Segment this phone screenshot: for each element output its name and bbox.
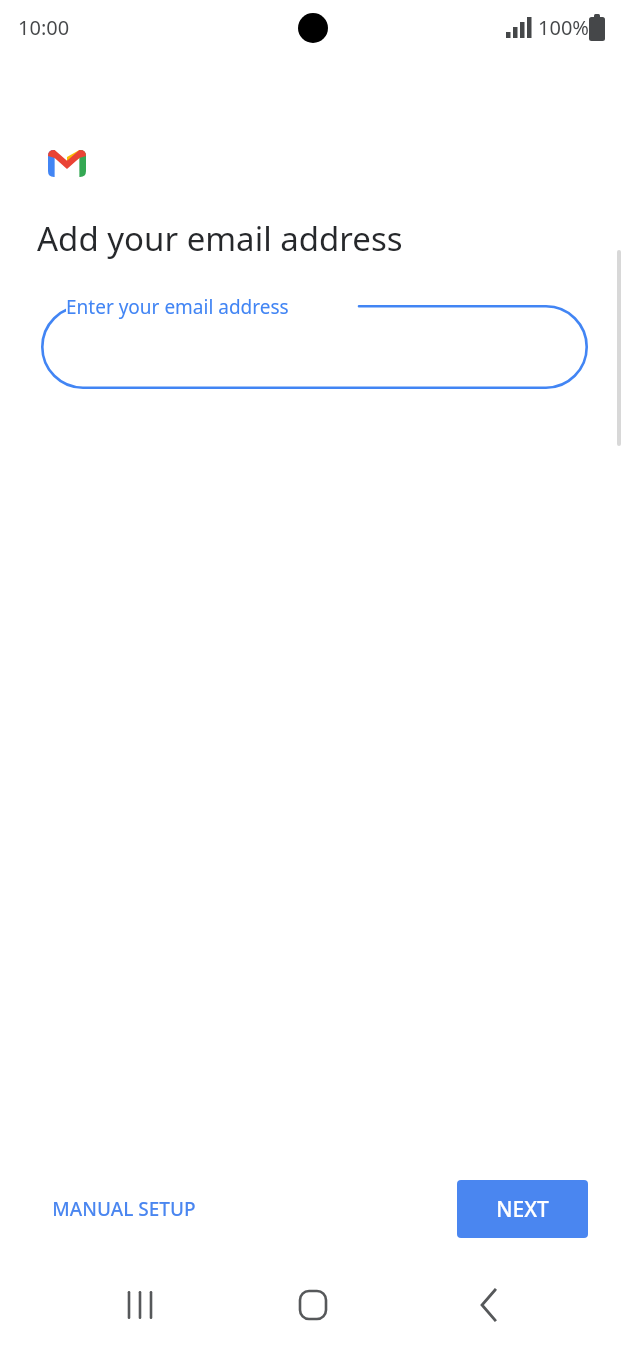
- button[interactable]: [41, 305, 588, 389]
- staticText: 10:00: [18, 14, 70, 41]
- button[interactable]: Back: [449, 1265, 529, 1345]
- staticText: MANUAL SETUP: [52, 1196, 196, 1222]
- staticText: 100%: [538, 14, 589, 41]
- staticText: NEXT: [496, 1195, 549, 1224]
- staticText: Enter your email address: [66, 294, 289, 320]
- button[interactable]: MANUAL SETUP: [22, 1184, 226, 1234]
- staticText: Add your email address: [37, 216, 403, 261]
- button[interactable]: Recent apps: [100, 1265, 180, 1345]
- button[interactable]: Home: [273, 1265, 353, 1345]
- button[interactable]: NEXT: [457, 1180, 588, 1238]
